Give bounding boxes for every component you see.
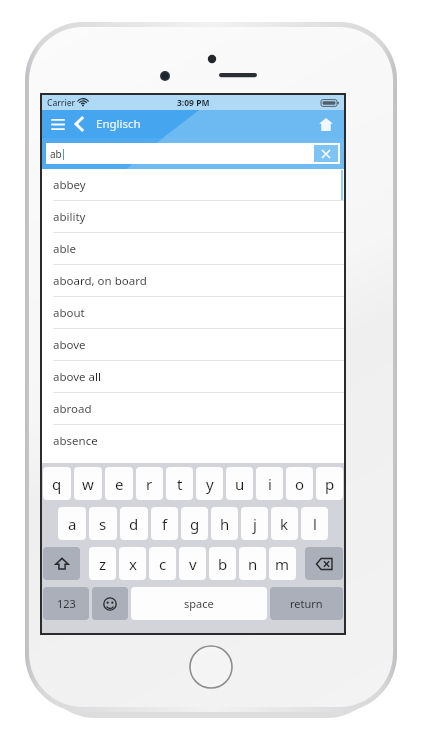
staticText: 123 bbox=[57, 596, 76, 611]
staticText: n bbox=[248, 554, 258, 574]
button[interactable]: g bbox=[181, 507, 208, 540]
button[interactable]: aboard, on board bbox=[42, 265, 344, 297]
staticText: return bbox=[290, 596, 323, 611]
staticText: able bbox=[53, 241, 76, 257]
staticText: c bbox=[159, 554, 167, 574]
button[interactable]: Backspace bbox=[305, 547, 343, 580]
button[interactable]: 123 bbox=[43, 587, 89, 620]
button[interactable]: able bbox=[42, 233, 344, 265]
button[interactable]: c bbox=[149, 547, 176, 580]
staticText: t bbox=[177, 474, 183, 494]
staticText: d bbox=[129, 514, 139, 534]
button[interactable]: k bbox=[271, 507, 298, 540]
staticText: p bbox=[325, 474, 335, 494]
button[interactable]: h bbox=[211, 507, 238, 540]
staticText: abroad bbox=[53, 401, 92, 417]
staticText: a bbox=[68, 514, 77, 534]
staticText: abbey bbox=[53, 177, 86, 193]
button[interactable]: above bbox=[42, 329, 344, 361]
staticText: k bbox=[280, 514, 289, 534]
staticText: y bbox=[206, 474, 214, 494]
button[interactable]: t bbox=[166, 467, 193, 500]
button[interactable]: Menu bbox=[47, 113, 69, 135]
button[interactable]: ability bbox=[42, 201, 344, 233]
staticText: above all bbox=[53, 369, 101, 385]
staticText: r bbox=[146, 474, 153, 494]
staticText: Englisch bbox=[96, 116, 141, 132]
button[interactable]: w bbox=[74, 467, 102, 500]
button[interactable]: e bbox=[105, 467, 133, 500]
staticText: z bbox=[99, 554, 107, 574]
staticText: space bbox=[184, 596, 214, 611]
staticText: w bbox=[82, 474, 94, 494]
staticText: Carrier bbox=[47, 97, 76, 109]
staticText: q bbox=[52, 474, 62, 494]
button[interactable]: above all bbox=[42, 361, 344, 393]
staticText: o bbox=[295, 474, 305, 494]
staticText: ability bbox=[53, 209, 86, 225]
button[interactable]: r bbox=[136, 467, 163, 500]
button[interactable]: q bbox=[43, 467, 71, 500]
button[interactable]: d bbox=[120, 507, 148, 540]
staticText: g bbox=[190, 514, 200, 534]
staticText: h bbox=[220, 514, 230, 534]
button[interactable]: y bbox=[196, 467, 223, 500]
button[interactable]: i bbox=[256, 467, 283, 500]
button[interactable]: return bbox=[270, 587, 343, 620]
button[interactable]: x bbox=[119, 547, 146, 580]
button[interactable]: n bbox=[239, 547, 266, 580]
button[interactable]: o bbox=[286, 467, 313, 500]
button[interactable]: Emoji bbox=[92, 587, 128, 620]
button[interactable]: Clear bbox=[314, 145, 338, 162]
button[interactable]: z bbox=[89, 547, 116, 580]
button[interactable]: Home bbox=[314, 112, 338, 136]
button[interactable]: Shift bbox=[43, 547, 80, 580]
staticText: s bbox=[99, 514, 107, 534]
staticText: f bbox=[162, 514, 168, 534]
button[interactable]: abroad bbox=[42, 393, 344, 425]
button[interactable]: j bbox=[241, 507, 268, 540]
staticText: e bbox=[115, 474, 124, 494]
button[interactable]: p bbox=[316, 467, 343, 500]
staticText: i bbox=[268, 474, 272, 494]
staticText: absence bbox=[53, 433, 98, 449]
staticText: x bbox=[129, 554, 137, 574]
staticText: l bbox=[313, 514, 317, 534]
button[interactable]: b bbox=[209, 547, 236, 580]
button[interactable]: Back bbox=[70, 113, 90, 135]
button[interactable]: u bbox=[226, 467, 253, 500]
button[interactable]: about bbox=[42, 297, 344, 329]
staticText: j bbox=[253, 514, 257, 534]
staticText: ab bbox=[50, 147, 62, 161]
button[interactable]: absence bbox=[42, 425, 344, 457]
staticText: 3:09 PM bbox=[177, 97, 210, 109]
staticText: above bbox=[53, 337, 86, 353]
button[interactable]: space bbox=[131, 587, 267, 620]
staticText: m bbox=[275, 554, 290, 574]
staticText: v bbox=[189, 554, 197, 574]
button[interactable]: f bbox=[151, 507, 178, 540]
button[interactable]: m bbox=[269, 547, 296, 580]
button[interactable]: v bbox=[179, 547, 206, 580]
button[interactable]: a bbox=[58, 507, 86, 540]
button[interactable]: abbey bbox=[42, 169, 344, 201]
staticText: about bbox=[53, 305, 85, 321]
staticText: aboard, on board bbox=[53, 273, 147, 289]
button[interactable]: l bbox=[301, 507, 328, 540]
button[interactable]: s bbox=[89, 507, 117, 540]
button[interactable]: ab bbox=[46, 143, 340, 164]
staticText: u bbox=[235, 474, 245, 494]
staticText: b bbox=[218, 554, 228, 574]
